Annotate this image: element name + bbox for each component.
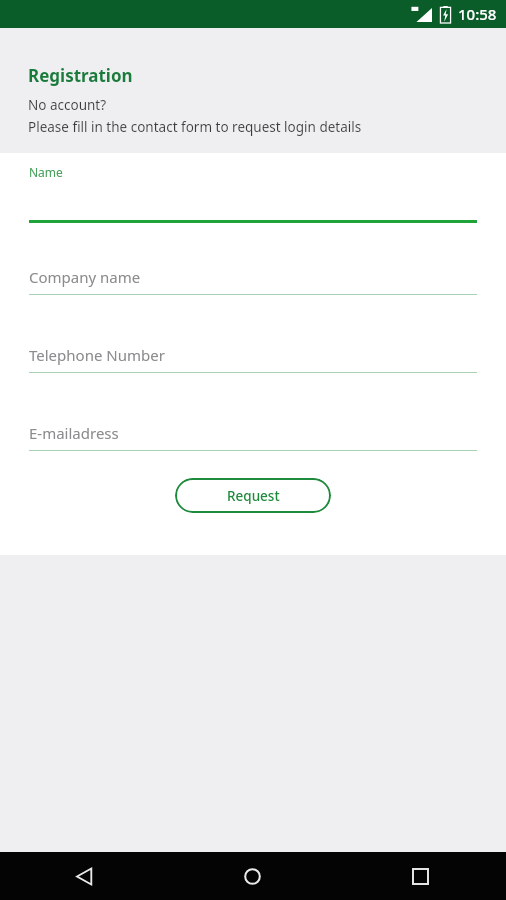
staticText: E-mailadress	[29, 423, 119, 443]
staticText: Telephone Number	[29, 345, 165, 365]
staticText: Registration	[28, 64, 133, 87]
staticText: 10:58	[458, 4, 497, 24]
button[interactable]: Back	[0, 852, 168, 900]
button[interactable]: Home	[168, 852, 336, 900]
staticText: Company name	[29, 267, 141, 287]
button[interactable]: Request	[175, 478, 331, 513]
staticText: Please fill in the contact form to reque…	[28, 118, 362, 136]
staticText: No account?	[28, 96, 107, 114]
button[interactable]: Telephone Number	[29, 345, 477, 373]
button[interactable]: Name	[29, 164, 477, 223]
button[interactable]: E-mailadress	[29, 423, 477, 451]
staticText: Name	[29, 164, 63, 180]
button[interactable]: Recent apps	[336, 852, 504, 900]
button[interactable]: Company name	[29, 267, 477, 295]
staticText: Request	[227, 487, 280, 505]
